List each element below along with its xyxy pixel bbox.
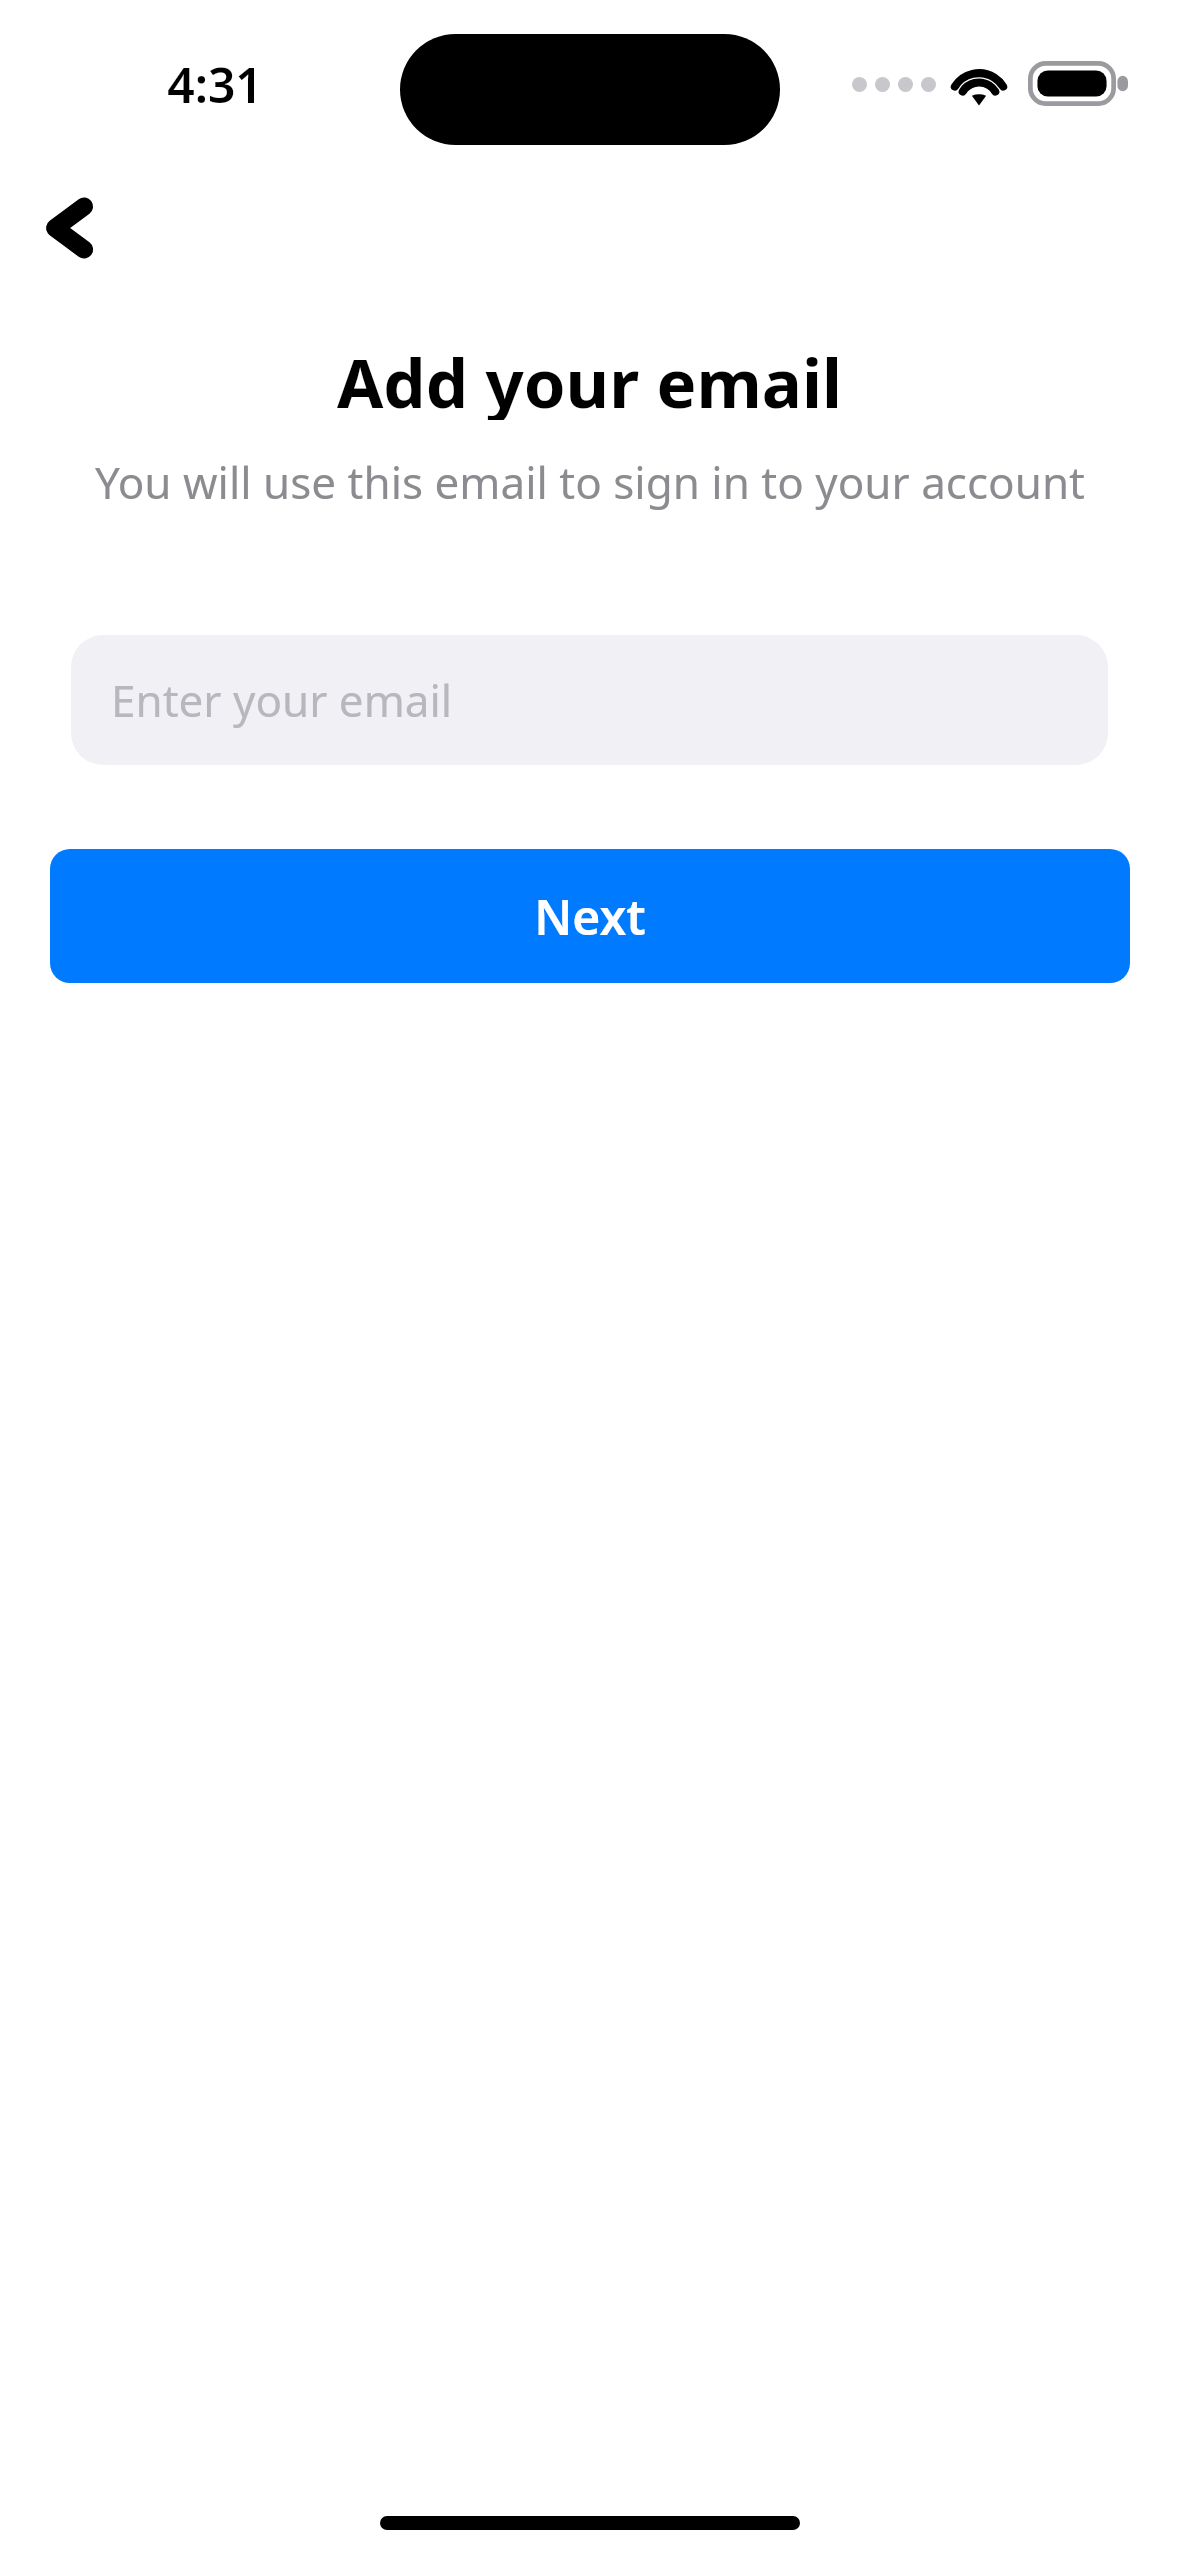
button[interactable]: Next [50,849,1130,983]
staticText: Enter your email [111,670,453,730]
button[interactable]: Enter your email [71,635,1108,765]
button[interactable]: Back [10,178,130,278]
staticText: Add your email [337,336,842,420]
staticText: You will use this email to sign in to yo… [95,452,1085,512]
staticText: 4:31 [167,52,263,114]
staticText: Next [534,884,646,949]
